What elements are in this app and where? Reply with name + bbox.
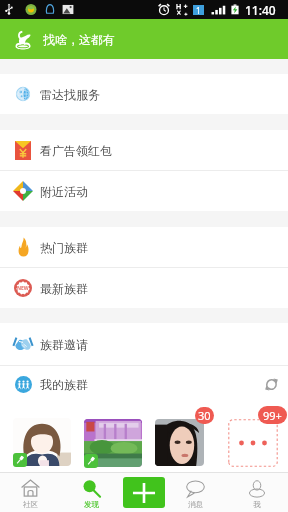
button[interactable]: 消息 — [164, 472, 226, 512]
staticText: 1 — [196, 5, 201, 15]
staticText: 消息 — [188, 500, 203, 509]
button[interactable]: 我 — [226, 472, 288, 512]
button[interactable]: 找啥，这都有 — [0, 19, 288, 59]
staticText: 我 — [253, 500, 261, 509]
button[interactable]: 看广告领红包 — [0, 130, 288, 170]
button[interactable]: Refresh — [256, 369, 286, 399]
staticText: 我的族群 — [40, 377, 88, 392]
button[interactable] — [13, 418, 71, 466]
staticText: 11:40 — [245, 2, 276, 18]
button[interactable] — [84, 419, 142, 467]
staticText: 雷达找服务 — [40, 87, 100, 102]
button[interactable]: 附近活动 — [0, 171, 288, 211]
staticText: 找啥，这都有 — [43, 32, 115, 47]
button[interactable]: Add — [123, 477, 165, 508]
button[interactable]: NEW — [0, 268, 288, 308]
staticText: 社区 — [23, 500, 38, 509]
button[interactable]: 热门族群 — [0, 227, 288, 267]
staticText: 99+ — [263, 408, 282, 423]
staticText: 30 — [198, 408, 211, 423]
staticText: 最新族群 — [40, 281, 88, 296]
button[interactable]: More — [228, 419, 278, 467]
staticText: 热门族群 — [40, 240, 88, 255]
button[interactable]: 族群邀请 — [0, 323, 288, 365]
button[interactable]: 社区 — [0, 472, 61, 512]
button[interactable]: 雷达找服务 — [0, 74, 288, 114]
staticText: 发现 — [84, 500, 99, 509]
staticText: NEW — [17, 285, 29, 292]
staticText: 看广告领红包 — [40, 143, 112, 158]
button[interactable]: 我的族群 — [0, 366, 288, 402]
staticText: 族群邀请 — [40, 337, 88, 352]
staticText: 附近活动 — [40, 184, 88, 199]
button[interactable]: 发现 — [61, 472, 122, 512]
button[interactable] — [155, 419, 204, 466]
